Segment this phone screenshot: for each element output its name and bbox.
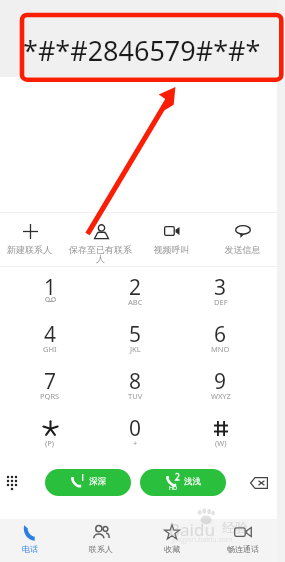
button[interactable]: 联系人 [65,519,136,562]
button[interactable]: 0 [93,414,178,461]
staticText: MNO [211,344,230,354]
staticText: 经验 [222,519,248,535]
staticText: 7 [44,367,57,396]
staticText: 畅连通话 [227,544,259,554]
staticText: Baidu [169,518,215,541]
staticText: 发送信息 [211,244,274,255]
button[interactable]: 8 [93,367,178,414]
staticText: 视频呼叫 [140,244,203,255]
button[interactable]: (P) [7,414,93,461]
button[interactable]: 6 [178,320,263,367]
staticText: 4 [44,320,57,349]
staticText: 5 [129,320,142,349]
button[interactable]: (W) [178,414,263,461]
staticText: 新建联系人 [0,244,61,255]
staticText: 2 [129,273,142,302]
staticText: 1 [44,273,57,302]
staticText: 保存至已有联系人 [69,244,132,265]
button[interactable]: HD [140,469,226,496]
button[interactable]: 9 [178,367,263,414]
staticText: (W) [215,438,227,448]
button[interactable]: 收藏 [136,519,207,562]
staticText: 8 [129,367,142,396]
staticText: (P) [45,438,55,448]
staticText: 浅浅 [184,476,201,487]
button[interactable]: 1 [7,273,93,320]
staticText: JKL [130,344,141,354]
button[interactable]: 保存至已有联系人 [65,213,136,266]
staticText: 联系人 [89,544,113,554]
staticText: 6 [214,320,227,349]
staticText: 3 [214,273,227,302]
button[interactable]: 5 [93,320,178,367]
staticText: ABC [128,297,143,307]
button[interactable]: 4 [7,320,93,367]
staticText: 深深 [89,476,106,487]
staticText: HD [169,484,178,491]
staticText: DEF [214,297,228,307]
staticText: 收藏 [164,544,180,554]
button[interactable]: 视频呼叫 [136,213,207,266]
button[interactable]: 2 [93,273,178,320]
button[interactable]: Delete [226,469,277,496]
staticText: 0 [129,414,142,443]
staticText: jingyan.baidu.com [172,535,233,545]
button[interactable]: 7 [7,367,93,414]
staticText: 9 [214,367,227,396]
staticText: 电话 [22,544,38,554]
button[interactable]: 畅连通话 [207,519,278,562]
button[interactable]: 发送信息 [207,213,278,266]
staticText: *#*#2846579#*#* [23,32,261,69]
button[interactable]: Dialpad [0,469,45,496]
button[interactable]: 深深 [45,469,131,496]
staticText: TUV [128,391,143,401]
staticText: PQRS [40,391,60,401]
button[interactable]: 电话 [0,519,65,562]
button[interactable]: 新建联系人 [0,213,65,266]
staticText: WXYZ [211,391,231,401]
staticText: GHI [43,344,57,354]
button[interactable]: 3 [178,273,263,320]
staticText: + [133,438,138,448]
